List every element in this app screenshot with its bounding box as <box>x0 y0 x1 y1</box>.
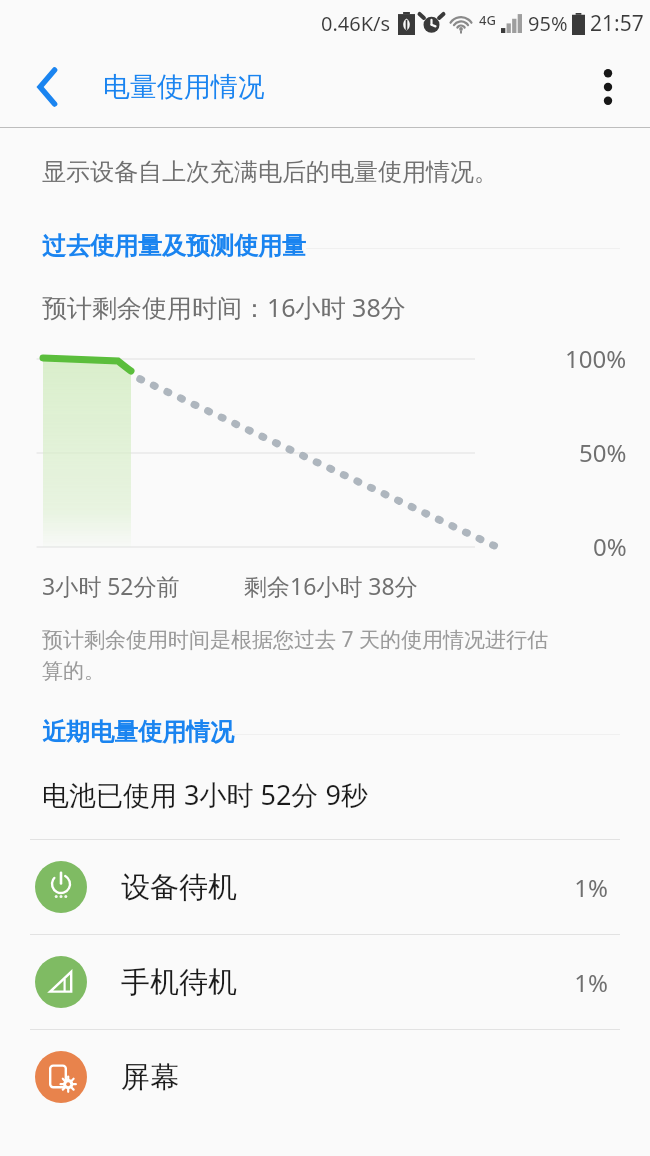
staticText: 剩余16小时 38分 <box>244 570 418 601</box>
staticText: 100% <box>565 342 627 375</box>
staticText: 21:57 <box>590 9 644 38</box>
button[interactable]: More options <box>580 59 636 115</box>
staticText: 3小时 52分前 <box>42 570 180 601</box>
staticText: 0.46K/s <box>321 10 391 37</box>
staticText: 预计剩余使用时间是根据您过去 7 天的使用情况进行估 算的。 <box>42 625 548 684</box>
staticText: 电池已使用 3小时 52分 9秒 <box>42 776 368 813</box>
button[interactable]: 手机待机 <box>0 935 650 1029</box>
staticText: 1% <box>574 871 608 904</box>
staticText: 显示设备自上次充满电后的电量使用情况。 <box>42 157 498 187</box>
staticText: 95% <box>528 10 568 37</box>
staticText: 4G <box>479 11 496 29</box>
staticText: 1% <box>574 966 608 999</box>
staticText: 过去使用量及预测使用量 <box>42 231 306 261</box>
staticText: 50% <box>579 436 627 469</box>
button[interactable]: 设备待机 <box>0 840 650 934</box>
staticText: 预计剩余使用时间：16小时 38分 <box>42 290 406 324</box>
staticText: 屏幕 <box>121 1059 608 1096</box>
staticText: 近期电量使用情况 <box>42 717 234 747</box>
staticText: 手机待机 <box>121 964 574 1001</box>
staticText: 电量使用情况 <box>103 70 265 104</box>
button[interactable]: Back <box>20 59 76 115</box>
button[interactable]: 屏幕 <box>0 1030 650 1124</box>
staticText: 0% <box>593 530 627 563</box>
staticText: 设备待机 <box>121 869 574 906</box>
